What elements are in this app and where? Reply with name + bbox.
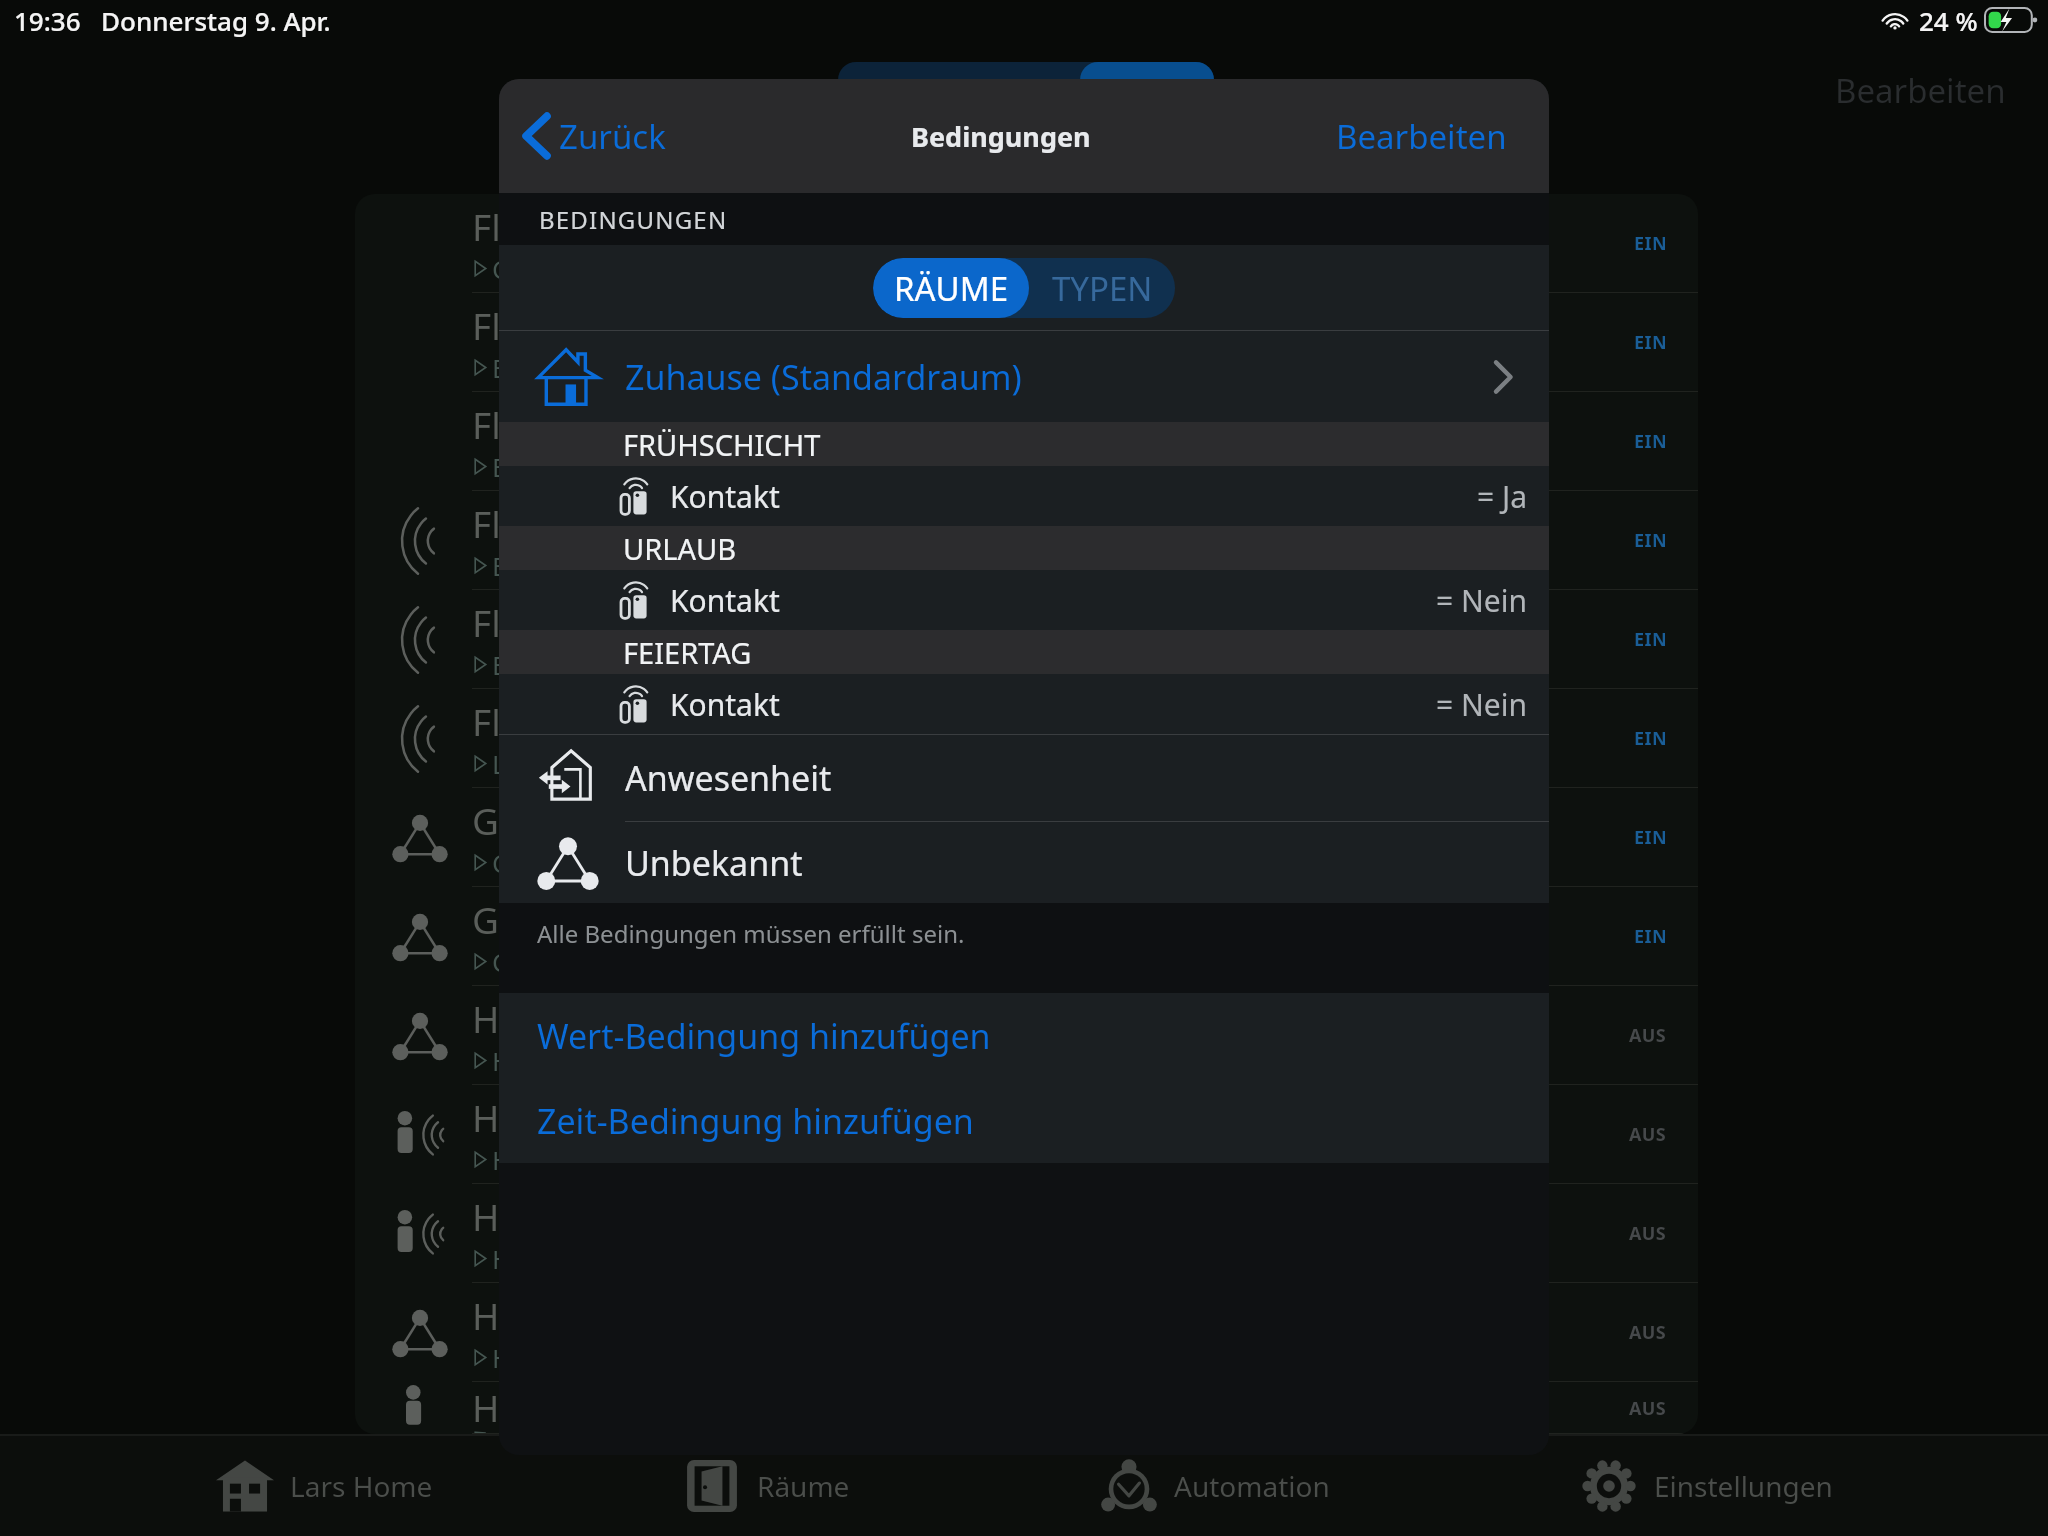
staticText: Heizung Nacht [472,1191,729,1241]
button[interactable]: Gute Nacht [355,788,1698,887]
button[interactable]: Flurlicht Licht aus [355,689,1698,788]
button[interactable]: Lars Home [216,1436,433,1536]
staticText: Bearbeiten [1336,114,1507,159]
button[interactable]: Flurlicht Bewegung 2 [355,392,1698,491]
staticText: Licht [492,746,551,781]
button[interactable]: Zeit-Bedingung hinzufügen [499,1079,1549,1163]
staticText: Bedingungen [911,118,1091,155]
button[interactable]: EIN [1634,491,1667,590]
button[interactable]: Räume [683,1436,850,1536]
button[interactable]: EIN [1634,392,1667,491]
staticText: = Ja [1477,476,1527,517]
button[interactable]: Flurlicht Bewegung 3 [355,491,1698,590]
staticText: Heizung Morgens [472,993,781,1043]
button[interactable]: AUS [1629,1085,1667,1184]
button[interactable]: Heizung Frost [355,1382,1698,1434]
staticText: Donnerstag 9. Apr. [101,3,331,38]
staticText: Flurlicht Bewegung 2 [472,399,838,449]
button[interactable]: AUS [1629,1184,1667,1283]
button[interactable]: Kontakt [499,466,1549,526]
button[interactable]: Zurück [523,113,666,159]
staticText: Flurlicht Abend [472,201,735,251]
staticText: EIN [1634,330,1667,355]
staticText: EIN [1634,429,1667,454]
button[interactable]: Kontakt [499,570,1549,630]
button[interactable]: Flurlicht Abend [355,194,1698,293]
button[interactable]: EIN [1634,590,1667,689]
staticText: FEIERTAG [623,633,752,672]
staticText: Clock [492,944,558,979]
staticText: Heizung [492,1142,593,1177]
staticText: EIN [1634,924,1667,949]
staticText: Bewegung [492,548,623,583]
staticText: Heizung [492,1340,593,1375]
button[interactable]: Anwesenheit [499,735,1549,821]
staticText: Anwesenheit [625,755,832,801]
staticText: Räume [757,1467,850,1505]
button[interactable]: Heizung Abend [355,1085,1698,1184]
staticText: EIN [1634,726,1667,751]
button[interactable]: EIN [1634,788,1667,887]
button[interactable]: Bearbeiten [1835,68,2006,113]
button[interactable]: Unbekannt [499,822,1549,903]
button[interactable]: Einstellungen [1580,1436,1833,1536]
button[interactable]: RÄUME [873,258,1029,318]
staticText: Zurück [559,114,666,159]
staticText: Clock [492,251,558,286]
staticText: Heizung [492,1432,593,1434]
staticText: Gute Nacht 2 [472,894,700,944]
staticText: URLAUB [623,529,737,568]
staticText: Kontakt [670,580,780,621]
staticText: Heizung Frost [472,1382,713,1432]
staticText: Kontakt [670,476,780,517]
staticText: Zeit-Bedingung hinzufügen [537,1098,974,1144]
staticText: FRÜHSCHICHT [623,425,821,464]
button[interactable]: EIN [1634,887,1667,986]
staticText: = Nein [1436,580,1527,621]
staticText: Flurlicht Bewegung 3 [472,498,838,548]
staticText: = Nein [1436,684,1527,725]
button[interactable]: Flurlicht Bewegung [355,293,1698,392]
staticText: Flurlicht Licht aus [472,696,776,746]
staticText: Einstellungen [1654,1467,1833,1505]
staticText: Wert-Bedingung hinzufügen [537,1013,991,1059]
staticText: Bewegung [492,350,623,385]
button[interactable]: Kontakt [499,674,1549,734]
button[interactable]: EIN [1634,194,1667,293]
button[interactable]: Heizung Morgens [355,986,1698,1085]
staticText: Kontakt [670,684,780,725]
staticText: Lars Home [290,1467,433,1505]
button[interactable]: Heizung Urlaub [355,1283,1698,1382]
button[interactable]: Flurlicht Bewegung 4 [355,590,1698,689]
staticText: Bearbeiten [1835,68,2006,113]
staticText: RÄUME [894,266,1009,311]
button[interactable]: AUS [1629,1283,1667,1382]
button[interactable]: Automation [1100,1436,1330,1536]
staticText: Gute Nacht [472,795,669,845]
staticText: Heizung [492,1241,593,1276]
button[interactable]: Bearbeiten [1336,114,1507,159]
staticText: Alle Bedingungen müssen erfüllt sein. [537,917,965,950]
staticText: BEDINGUNGEN [539,203,728,236]
staticText: AUS [1629,1122,1667,1147]
button[interactable]: EIN [1634,689,1667,788]
staticText: 19:36 [14,3,81,38]
staticText: Flurlicht Bewegung [472,300,807,350]
staticText: EIN [1634,825,1667,850]
button[interactable]: Zuhause (Standardraum) [499,331,1549,422]
staticText: Bewegung [492,647,623,682]
button[interactable]: TYPEN [1029,258,1175,318]
button[interactable]: AUS [1629,1382,1667,1434]
staticText: EIN [1634,627,1667,652]
staticText: Unbekannt [625,840,803,886]
other: Öffnen [1493,360,1513,394]
button[interactable]: Heizung Nacht [355,1184,1698,1283]
button[interactable]: AUS [1629,986,1667,1085]
button[interactable]: Gute Nacht 2 [355,887,1698,986]
staticText: Heizung [492,1043,593,1078]
staticText: Bewegung [492,449,623,484]
button[interactable]: EIN [1634,293,1667,392]
staticText: EIN [1634,231,1667,256]
button[interactable]: Wert-Bedingung hinzufügen [499,993,1549,1079]
staticText: 24 % [1919,3,1978,38]
